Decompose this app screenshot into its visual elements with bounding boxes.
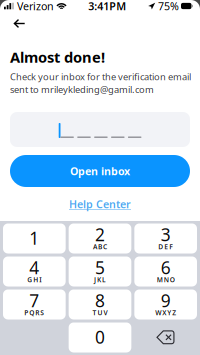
staticText: 3:41PM	[88, 0, 126, 13]
staticText: 5	[95, 256, 105, 279]
staticText: 4	[29, 256, 39, 279]
staticText: 9	[161, 289, 171, 312]
staticText: J K L	[94, 275, 106, 284]
staticText: A B C	[93, 242, 107, 251]
staticText: 1	[29, 226, 39, 249]
staticText: T U V	[92, 308, 107, 317]
staticText: 75%	[158, 0, 179, 13]
button[interactable]: 1	[3, 223, 66, 253]
staticText: 3	[161, 223, 171, 246]
staticText: sent to mrileykleding@gamil.com	[10, 83, 154, 96]
button[interactable]: Help Center	[65, 197, 135, 211]
button[interactable]: 9	[134, 289, 197, 319]
staticText: W X Y Z	[155, 308, 176, 317]
button[interactable]: Open inbox	[10, 155, 190, 187]
button[interactable]: 0	[69, 322, 131, 352]
staticText: Almost done!	[10, 47, 105, 67]
staticText: P Q R S	[24, 308, 44, 317]
staticText: D E F	[158, 242, 173, 251]
staticText: M N O	[157, 275, 175, 284]
staticText: 0	[95, 325, 105, 348]
button[interactable]: 2	[69, 223, 131, 253]
staticText: Help Center	[69, 197, 131, 211]
button[interactable]: 6	[134, 256, 197, 286]
button[interactable]: 3	[134, 223, 197, 253]
button[interactable]: 8	[69, 289, 131, 319]
staticText: Verizon	[17, 0, 54, 13]
staticText: Open inbox	[70, 164, 130, 178]
staticText: 2	[95, 223, 105, 246]
staticText: Check your inbox for the verification em…	[10, 70, 191, 83]
staticText: 7	[29, 289, 39, 312]
staticText: 6	[161, 256, 171, 279]
button[interactable]: Back	[6, 13, 32, 33]
button[interactable]: 7	[3, 289, 66, 319]
button[interactable]: 4	[3, 256, 66, 286]
button[interactable]: 5	[69, 256, 131, 286]
staticText: 8	[95, 289, 105, 312]
staticText: G H I	[27, 275, 41, 284]
button[interactable]: Delete	[134, 322, 197, 352]
